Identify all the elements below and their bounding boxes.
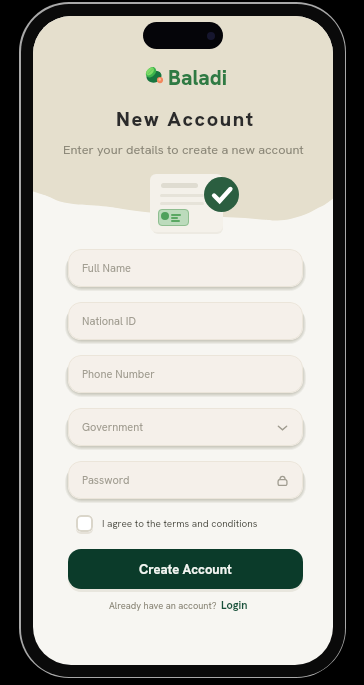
- button[interactable]: Baladi: [168, 64, 228, 91]
- staticText: New Account: [116, 106, 255, 132]
- staticText: Password: [82, 473, 130, 487]
- staticText: Full Name: [82, 261, 131, 275]
- other: Toggle password: [276, 474, 289, 487]
- staticText: I agree to the terms and conditions: [102, 517, 258, 530]
- other: Baladi logo: [144, 66, 164, 84]
- staticText: Enter your details to create a new accou…: [63, 141, 304, 158]
- staticText: Create Account: [139, 561, 232, 578]
- staticText: Already have an account?: [109, 600, 217, 612]
- staticText: Baladi: [168, 64, 228, 91]
- button[interactable]: National ID: [68, 302, 303, 340]
- button[interactable]: Password: [68, 461, 303, 499]
- staticText: Login: [221, 598, 248, 612]
- button[interactable]: I agree to the terms and conditions: [75, 512, 258, 534]
- other: Expand: [276, 421, 289, 434]
- button[interactable]: Create Account: [68, 549, 303, 589]
- button[interactable]: Login: [221, 598, 248, 612]
- button[interactable]: Phone Number: [68, 355, 303, 393]
- staticText: National ID: [82, 314, 136, 328]
- staticText: Government: [82, 420, 144, 434]
- button[interactable]: Government: [68, 408, 303, 446]
- button[interactable]: Full Name: [68, 249, 303, 287]
- staticText: Phone Number: [82, 367, 155, 381]
